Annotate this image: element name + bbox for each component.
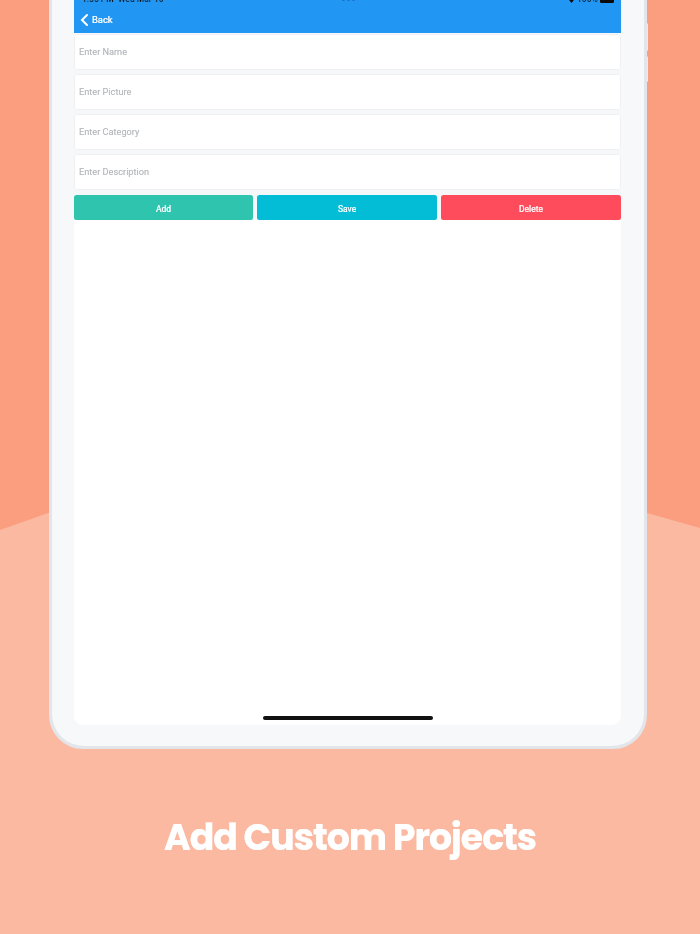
button[interactable]: Enter Name — [74, 34, 621, 70]
staticText: Enter Picture — [79, 86, 132, 97]
staticText: Save — [338, 204, 357, 214]
button[interactable]: Enter Category — [74, 114, 621, 150]
staticText: 100% — [577, 0, 598, 4]
staticText: Delete — [519, 204, 543, 214]
staticText: Enter Category — [79, 126, 140, 137]
button[interactable]: Save — [257, 195, 437, 220]
staticText: Enter Name — [79, 46, 128, 57]
staticText: Add — [156, 204, 172, 214]
button[interactable]: Enter Description — [74, 154, 621, 190]
button[interactable]: Enter Picture — [74, 74, 621, 110]
staticText: 1:55 PM Wed Mar 10 — [82, 0, 164, 4]
staticText: Enter Description — [79, 166, 150, 177]
button[interactable]: Back — [74, 8, 121, 30]
button[interactable]: Delete — [441, 195, 621, 220]
staticText: Back — [92, 14, 113, 25]
staticText: Add Custom Projects — [0, 812, 700, 863]
button[interactable]: Add — [74, 195, 253, 220]
